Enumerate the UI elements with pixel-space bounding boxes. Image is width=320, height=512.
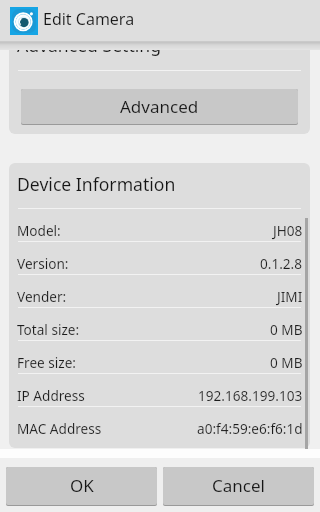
staticText: MAC Address bbox=[17, 419, 102, 438]
button[interactable]: Free size: bbox=[9, 341, 310, 373]
staticText: Advanced Setting bbox=[17, 50, 162, 57]
staticText: Version: bbox=[17, 254, 69, 273]
staticText: Vender: bbox=[17, 287, 67, 306]
staticText: OK bbox=[70, 474, 94, 497]
staticText: 192.168.199.103 bbox=[198, 386, 303, 405]
staticText: Device Information bbox=[17, 172, 176, 196]
button[interactable]: Model: bbox=[9, 209, 310, 241]
staticText: JH08 bbox=[273, 221, 303, 240]
staticText: JIMI bbox=[277, 287, 303, 306]
button[interactable]: Cancel bbox=[163, 466, 314, 505]
staticText: IP Address bbox=[17, 386, 85, 405]
button[interactable]: Total size: bbox=[9, 308, 310, 340]
staticText: a0:f4:59:e6:f6:1d bbox=[197, 419, 303, 438]
staticText: Free size: bbox=[17, 353, 76, 372]
button[interactable]: Advanced bbox=[21, 88, 298, 124]
button[interactable]: OK bbox=[6, 466, 157, 505]
staticText: Cancel bbox=[212, 474, 265, 497]
other: Camera bbox=[10, 7, 38, 35]
staticText: 0 MB bbox=[270, 353, 303, 372]
staticText: Model: bbox=[17, 221, 61, 240]
button[interactable]: Vender: bbox=[9, 275, 310, 307]
staticText: 0 MB bbox=[270, 320, 303, 339]
staticText: Advanced bbox=[120, 95, 199, 118]
button[interactable]: MAC Address bbox=[9, 407, 310, 439]
staticText: Total size: bbox=[17, 320, 80, 339]
button[interactable]: IP Address bbox=[9, 374, 310, 406]
staticText: Edit Camera bbox=[43, 8, 135, 30]
button[interactable]: Version: bbox=[9, 242, 310, 274]
staticText: 0.1.2.8 bbox=[260, 254, 303, 273]
